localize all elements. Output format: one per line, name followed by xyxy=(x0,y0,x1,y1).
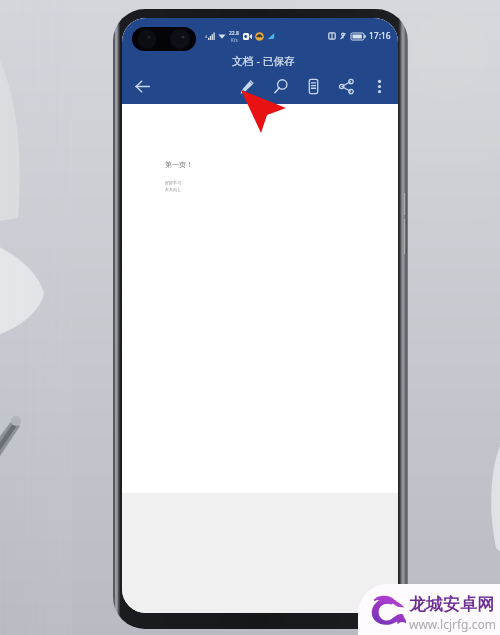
staticText: 天天向上 xyxy=(165,187,181,192)
staticText: 文档 - 已保存 xyxy=(232,53,296,67)
staticText: 第一页！ xyxy=(165,160,193,169)
staticText: 好好学习 xyxy=(165,180,181,185)
staticText: www.lcjrfg.com xyxy=(409,616,496,632)
staticText: 龙城安卓网 xyxy=(409,594,494,615)
button[interactable]: Share xyxy=(332,72,360,100)
staticText: 22.8 xyxy=(229,30,239,37)
staticText: K/s xyxy=(231,37,238,43)
button[interactable]: Document view xyxy=(299,72,327,100)
button[interactable]: More options xyxy=(365,72,393,100)
button[interactable]: Back xyxy=(128,72,156,100)
staticText: 4 xyxy=(205,34,208,39)
staticText: 17:16 xyxy=(369,30,391,42)
button[interactable]: Edit xyxy=(233,72,261,100)
button[interactable]: Search xyxy=(267,72,295,100)
